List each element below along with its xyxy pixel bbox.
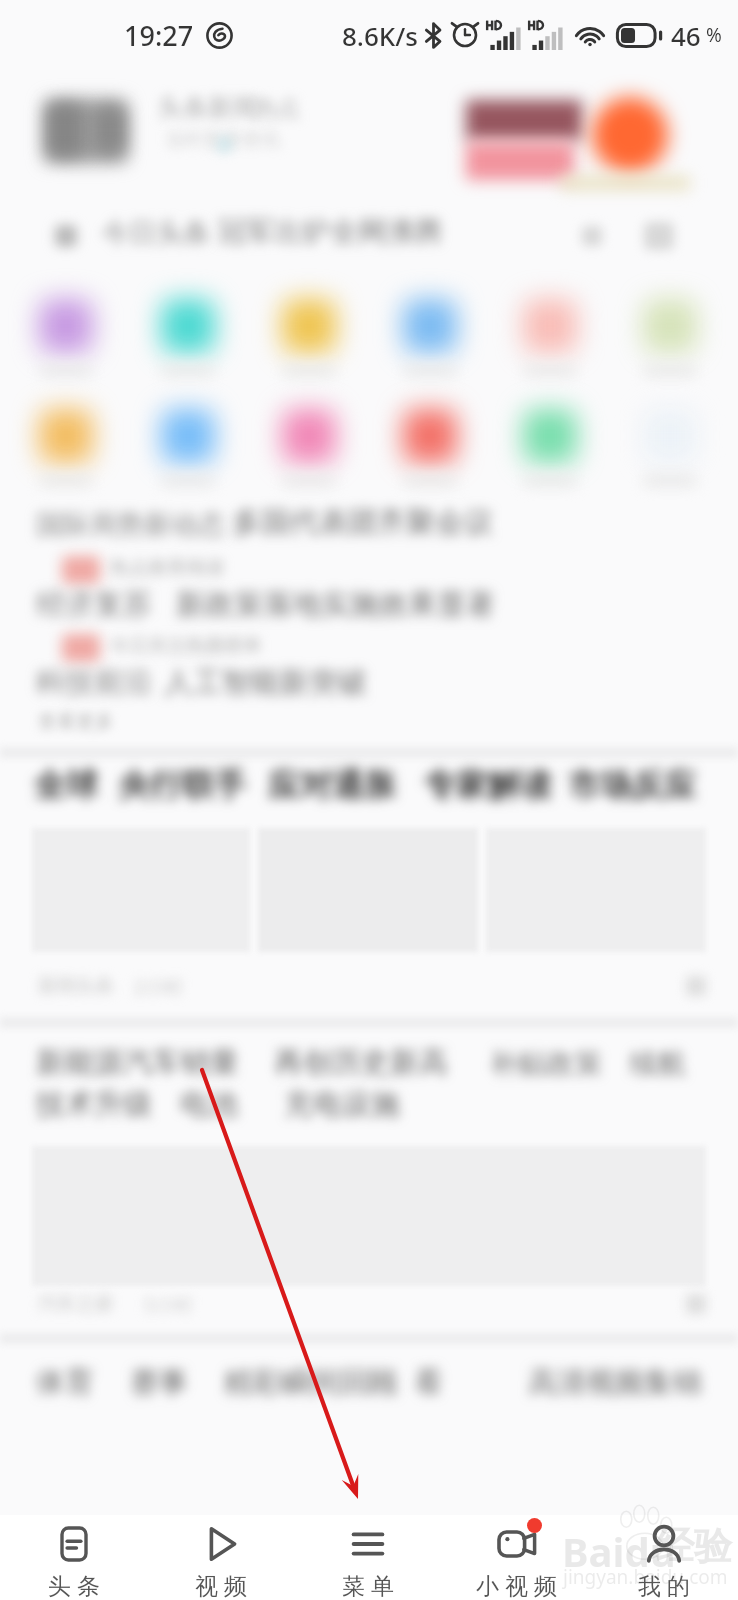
staticText: 市场反应 xyxy=(568,765,696,805)
staticText: 赛事 xyxy=(130,1364,188,1401)
button[interactable]: 菜 单 xyxy=(294,1515,442,1600)
staticText: 汽车之家 xyxy=(38,1292,114,1316)
staticText: 体育 xyxy=(36,1364,94,1401)
staticText: 多国代表团齐聚会议 xyxy=(232,504,493,541)
staticText: 头条新闻 xyxy=(158,92,258,123)
staticText: 5小时 xyxy=(144,1292,193,1318)
staticText: 科技前沿 xyxy=(36,664,152,701)
staticText: 热点 xyxy=(254,94,300,123)
staticText: 实时更新资讯 xyxy=(166,128,280,152)
staticText: 经验 xyxy=(656,1522,732,1570)
button[interactable]: 头 条 xyxy=(0,1515,147,1600)
staticText: 电池 xyxy=(180,1086,238,1123)
staticText: % xyxy=(701,22,722,48)
staticText: 热点推荐阅读 xyxy=(110,556,224,580)
staticText: Baidu xyxy=(562,1524,676,1578)
staticText: 冠军出炉全网沸腾 xyxy=(218,214,442,249)
staticText: 今日头条 xyxy=(102,216,210,250)
staticText: 新闻头条 xyxy=(38,974,114,998)
button[interactable]: 视 频 xyxy=(147,1515,294,1600)
button[interactable]: 我 的 xyxy=(590,1515,738,1600)
staticText: 查看更多 xyxy=(38,710,114,734)
staticText: 精彩瞬间回顾 xyxy=(224,1364,398,1401)
staticText: 应对通胀 xyxy=(268,765,396,805)
staticText: 看 xyxy=(414,1364,443,1401)
staticText: jingyan.baidu.com xyxy=(563,1564,728,1590)
button[interactable]: 小 视 频 xyxy=(442,1515,590,1600)
staticText: 全球 xyxy=(34,765,98,805)
staticText: 今日关注热搜榜单 xyxy=(110,634,262,658)
staticText: 视 频 xyxy=(195,1569,247,1600)
staticText: 专家解读 xyxy=(424,765,552,805)
staticText: 经济复苏 xyxy=(36,586,152,623)
staticText: 46 xyxy=(671,18,701,53)
staticText: 新政策落地实施效果显著 xyxy=(176,586,495,623)
staticText: 技术升级 xyxy=(36,1086,152,1123)
staticText: 头 条 xyxy=(48,1569,100,1600)
staticText: 补贴政策 xyxy=(490,1046,602,1081)
staticText: 小 视 频 xyxy=(476,1569,557,1600)
staticText: 8.6K/s xyxy=(342,18,418,53)
staticText: 续航 xyxy=(630,1046,686,1081)
staticText: 再创历史新高 xyxy=(274,1044,448,1081)
staticText: 2小时 xyxy=(134,974,183,1000)
staticText: 人工智能新突破 xyxy=(164,664,367,701)
staticText: 我 的 xyxy=(638,1569,690,1600)
staticText: 央行联手 xyxy=(118,765,246,805)
staticText: 充电设施 xyxy=(284,1086,400,1123)
staticText: 新能源汽车销量 xyxy=(36,1044,239,1081)
staticText: 国际局势新动态 xyxy=(36,508,225,542)
staticText: 新 xyxy=(216,134,234,157)
staticText: 菜 单 xyxy=(342,1569,394,1600)
staticText: 高清视频集锦 xyxy=(528,1364,702,1401)
staticText: 19:27 xyxy=(124,17,194,54)
